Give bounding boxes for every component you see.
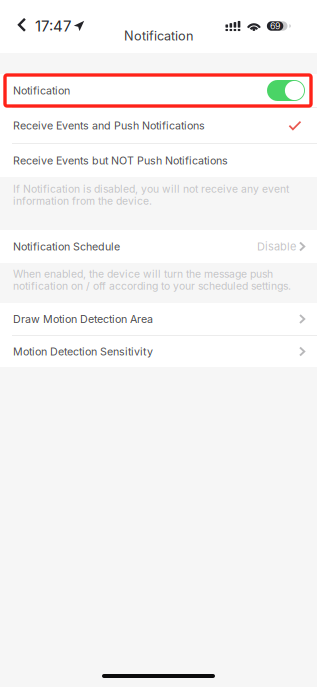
button[interactable]: Notification Schedule xyxy=(0,230,317,263)
staticText: Receive Events but NOT Push Notification… xyxy=(13,154,228,167)
staticText: Notification xyxy=(124,28,193,44)
staticText: Notification Schedule xyxy=(13,240,120,253)
staticText: Draw Motion Detection Area xyxy=(13,312,153,325)
staticText: Motion Detection Sensitivity xyxy=(13,345,153,358)
staticText: Notification xyxy=(13,84,70,97)
button[interactable]: Notification xyxy=(0,74,317,107)
button[interactable]: Receive Events and Push Notifications xyxy=(0,108,317,143)
button[interactable]: Back xyxy=(11,12,33,38)
staticText: 17:47 xyxy=(35,17,71,35)
staticText: When enabled, the device will turn the m… xyxy=(13,268,273,280)
staticText: notification on / off according to your … xyxy=(13,280,291,292)
button[interactable]: Receive Events but NOT Push Notification… xyxy=(0,144,317,177)
staticText: If Notification is disabled, you will no… xyxy=(13,183,289,195)
staticText: Receive Events and Push Notifications xyxy=(13,119,205,132)
button[interactable]: Motion Detection Sensitivity xyxy=(0,336,317,367)
staticText: information from the device. xyxy=(13,195,152,207)
staticText: 69 xyxy=(270,21,280,31)
staticText: Disable xyxy=(257,240,296,253)
button[interactable]: Draw Motion Detection Area xyxy=(0,303,317,335)
